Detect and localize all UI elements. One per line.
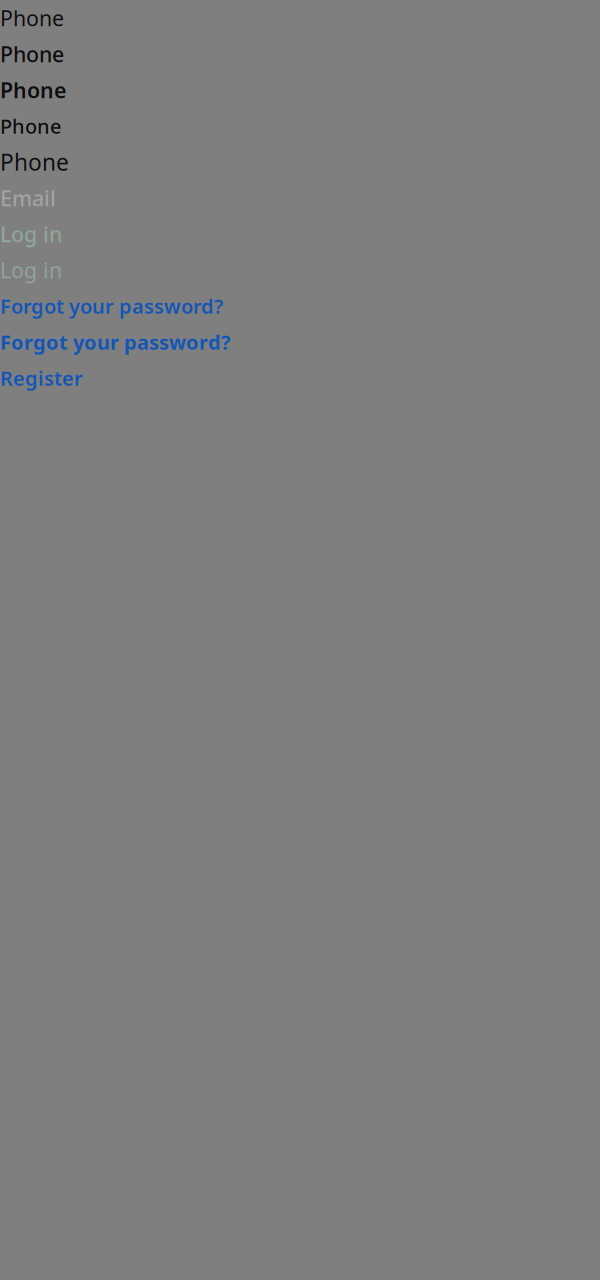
staticText: Log in [0, 256, 62, 284]
staticText: Phone [0, 76, 66, 104]
staticText: Phone [0, 4, 64, 32]
staticText: Email [0, 184, 56, 212]
staticText: Log in [0, 220, 62, 248]
staticText: Forgot your password? [0, 329, 231, 355]
staticText: Register [0, 365, 83, 391]
staticText: Phone [0, 147, 69, 177]
staticText: Phone [0, 40, 64, 68]
staticText: Forgot your password? [0, 293, 223, 319]
staticText: Phone [0, 113, 61, 139]
